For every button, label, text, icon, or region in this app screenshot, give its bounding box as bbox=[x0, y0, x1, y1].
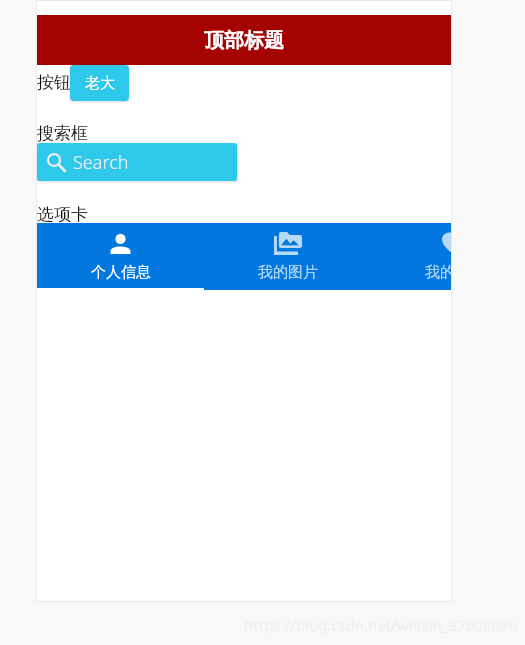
other: My favourites bbox=[442, 232, 451, 255]
staticText: Search bbox=[73, 150, 129, 175]
button[interactable]: 顶部标题 bbox=[37, 15, 451, 65]
staticText: 顶部标题 bbox=[204, 28, 284, 53]
staticText: https://blog.csdn.net/weixin_37608086 bbox=[244, 615, 518, 635]
other: My pictures bbox=[274, 232, 302, 255]
button[interactable]: 老大 bbox=[70, 65, 129, 101]
button[interactable]: My pictures bbox=[204, 223, 371, 290]
staticText: 个人信息 bbox=[91, 263, 151, 282]
staticText: 按钮 bbox=[37, 72, 71, 93]
staticText: 我的图片 bbox=[258, 263, 318, 282]
other: Profile bbox=[110, 233, 131, 254]
button[interactable]: Profile bbox=[37, 223, 204, 290]
button[interactable]: Search bbox=[37, 143, 237, 181]
staticText: 选项卡 bbox=[37, 204, 88, 225]
staticText: 搜索框 bbox=[37, 123, 88, 144]
staticText: 我的收藏 bbox=[425, 263, 451, 282]
staticText: 老大 bbox=[85, 74, 115, 93]
button[interactable]: My favourites bbox=[371, 223, 451, 290]
